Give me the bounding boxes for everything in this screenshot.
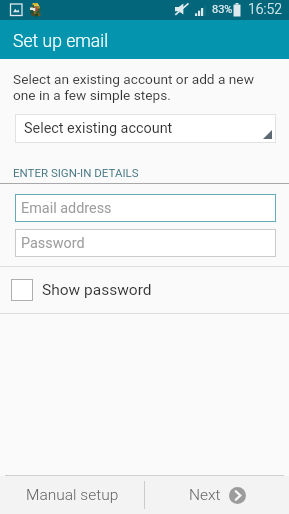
staticText: 83%: [212, 3, 233, 16]
button[interactable]: Manual setup: [0, 476, 144, 514]
staticText: Manual setup: [26, 486, 119, 504]
other: Next: [229, 487, 246, 504]
staticText: Show password: [42, 281, 152, 299]
staticText: ENTER SIGN-IN DETAILS: [13, 166, 139, 179]
button[interactable]: Password: [15, 229, 276, 257]
button[interactable]: Show password: [0, 267, 289, 313]
staticText: 16:52: [248, 1, 283, 17]
button[interactable]: Email address: [15, 194, 276, 222]
staticText: Email address: [21, 200, 112, 217]
button[interactable]: Next: [145, 476, 289, 514]
staticText: Password: [21, 235, 85, 252]
staticText: Set up email: [13, 31, 109, 52]
button[interactable]: Select existing account: [15, 114, 276, 143]
staticText: Select existing account: [24, 120, 173, 137]
staticText: Select an existing account or add a new …: [13, 71, 254, 103]
staticText: Next: [189, 486, 221, 504]
